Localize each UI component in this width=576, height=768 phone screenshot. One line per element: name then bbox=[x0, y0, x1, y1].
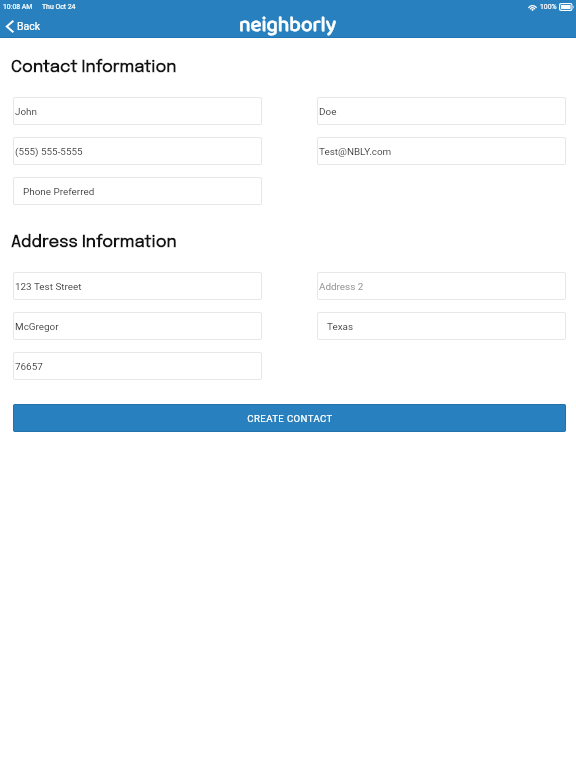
button[interactable]: McGregor bbox=[13, 312, 262, 340]
staticText: Address Information bbox=[11, 234, 177, 251]
staticText: John bbox=[15, 106, 38, 118]
button[interactable]: John bbox=[13, 97, 262, 125]
button[interactable]: CREATE CONTACT bbox=[13, 404, 566, 432]
staticText: neighborly bbox=[239, 8, 336, 42]
button[interactable]: Back bbox=[6, 18, 41, 34]
staticText: Back bbox=[17, 20, 41, 32]
staticText: Doe bbox=[319, 106, 337, 118]
staticText: Address 2 bbox=[319, 281, 364, 293]
button[interactable]: Doe bbox=[317, 97, 566, 125]
staticText: Texas bbox=[327, 321, 354, 333]
staticText: Thu Oct 24 bbox=[42, 3, 76, 11]
button[interactable]: 123 Test Street bbox=[13, 272, 262, 300]
staticText: (555) 555-5555 bbox=[15, 146, 83, 158]
staticText: McGregor bbox=[15, 321, 59, 333]
button[interactable]: (555) 555-5555 bbox=[13, 137, 262, 165]
button[interactable]: 76657 bbox=[13, 352, 262, 380]
button[interactable]: Texas bbox=[317, 312, 566, 340]
button[interactable]: Phone Preferred bbox=[13, 177, 262, 205]
staticText: 123 Test Street bbox=[15, 281, 82, 293]
staticText: CREATE CONTACT bbox=[247, 413, 333, 424]
staticText: Test@NBLY.com bbox=[319, 146, 392, 158]
button[interactable]: Address 2 bbox=[317, 272, 566, 300]
button[interactable]: Test@NBLY.com bbox=[317, 137, 566, 165]
staticText: 10:08 AM bbox=[3, 3, 33, 11]
staticText: Contact Information bbox=[11, 59, 177, 76]
staticText: 100% bbox=[540, 3, 557, 11]
staticText: Phone Preferred bbox=[23, 186, 95, 198]
staticText: 76657 bbox=[15, 361, 43, 373]
